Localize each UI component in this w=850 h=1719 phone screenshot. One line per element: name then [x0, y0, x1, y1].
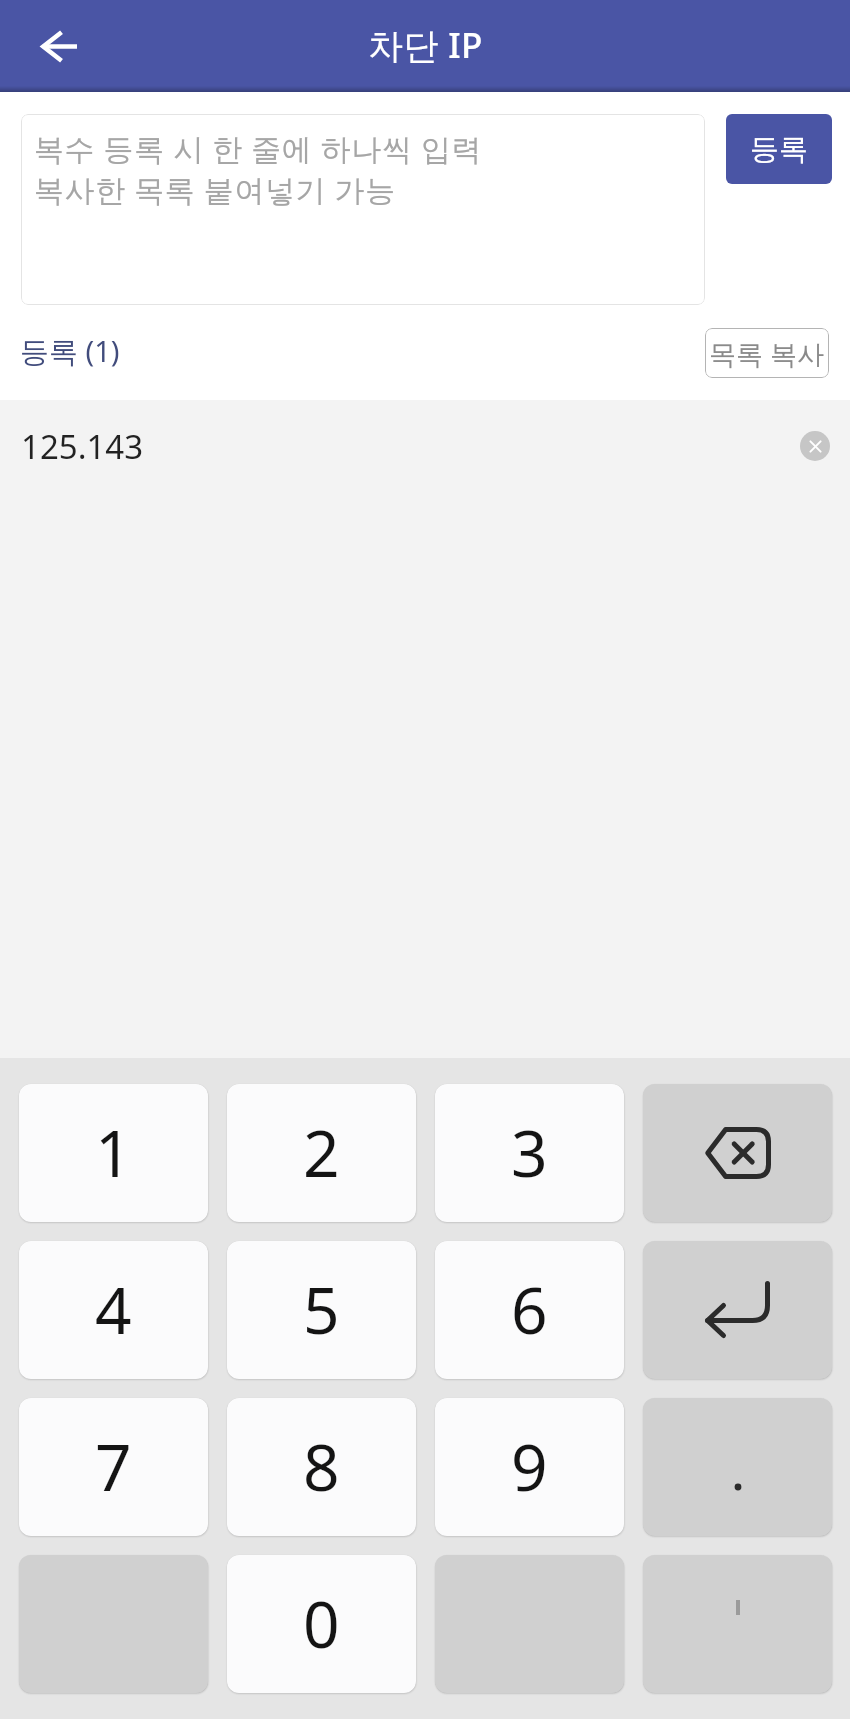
- button[interactable]: Dot: [643, 1398, 832, 1536]
- button[interactable]: 5: [227, 1241, 416, 1379]
- staticText: 6: [511, 1266, 548, 1353]
- staticText: 125.143: [21, 424, 144, 469]
- staticText: 목록 복사: [709, 335, 825, 372]
- staticText: 8: [303, 1423, 340, 1510]
- staticText: 7: [95, 1423, 132, 1510]
- staticText: 복수 등록 시 한 줄에 하나씩 입력 복사한 목록 붙여넣기 가능: [34, 128, 483, 210]
- button[interactable]: 9: [435, 1398, 624, 1536]
- button[interactable]: 4: [19, 1241, 208, 1379]
- staticText: 등록 (1): [20, 331, 120, 371]
- button[interactable]: 등록 (1): [8, 320, 132, 382]
- button[interactable]: 목록 복사: [705, 328, 829, 378]
- button[interactable]: 복수 등록 시 한 줄에 하나씩 입력 복사한 목록 붙여넣기 가능: [21, 114, 705, 305]
- button[interactable]: 0: [227, 1555, 416, 1693]
- button[interactable]: 2: [227, 1084, 416, 1222]
- button[interactable]: 6: [435, 1241, 624, 1379]
- staticText: 3: [511, 1109, 548, 1196]
- button[interactable]: 1: [19, 1084, 208, 1222]
- staticText: 0: [303, 1580, 340, 1667]
- button[interactable]: 등록: [726, 114, 832, 184]
- button[interactable]: Backspace: [643, 1084, 832, 1222]
- staticText: 2: [303, 1109, 340, 1196]
- staticText: 등록: [750, 131, 808, 168]
- button[interactable]: 7: [19, 1398, 208, 1536]
- staticText: 5: [303, 1266, 340, 1353]
- button[interactable]: 125.143: [0, 400, 850, 494]
- button[interactable]: Enter: [643, 1241, 832, 1379]
- button[interactable]: Back: [13, 0, 105, 92]
- button[interactable]: 8: [227, 1398, 416, 1536]
- staticText: 1: [95, 1109, 132, 1196]
- button[interactable]: 3: [435, 1084, 624, 1222]
- staticText: 4: [95, 1266, 132, 1353]
- staticText: 9: [511, 1423, 548, 1510]
- button[interactable]: Delete: [800, 431, 830, 461]
- staticText: 차단 IP: [368, 21, 483, 69]
